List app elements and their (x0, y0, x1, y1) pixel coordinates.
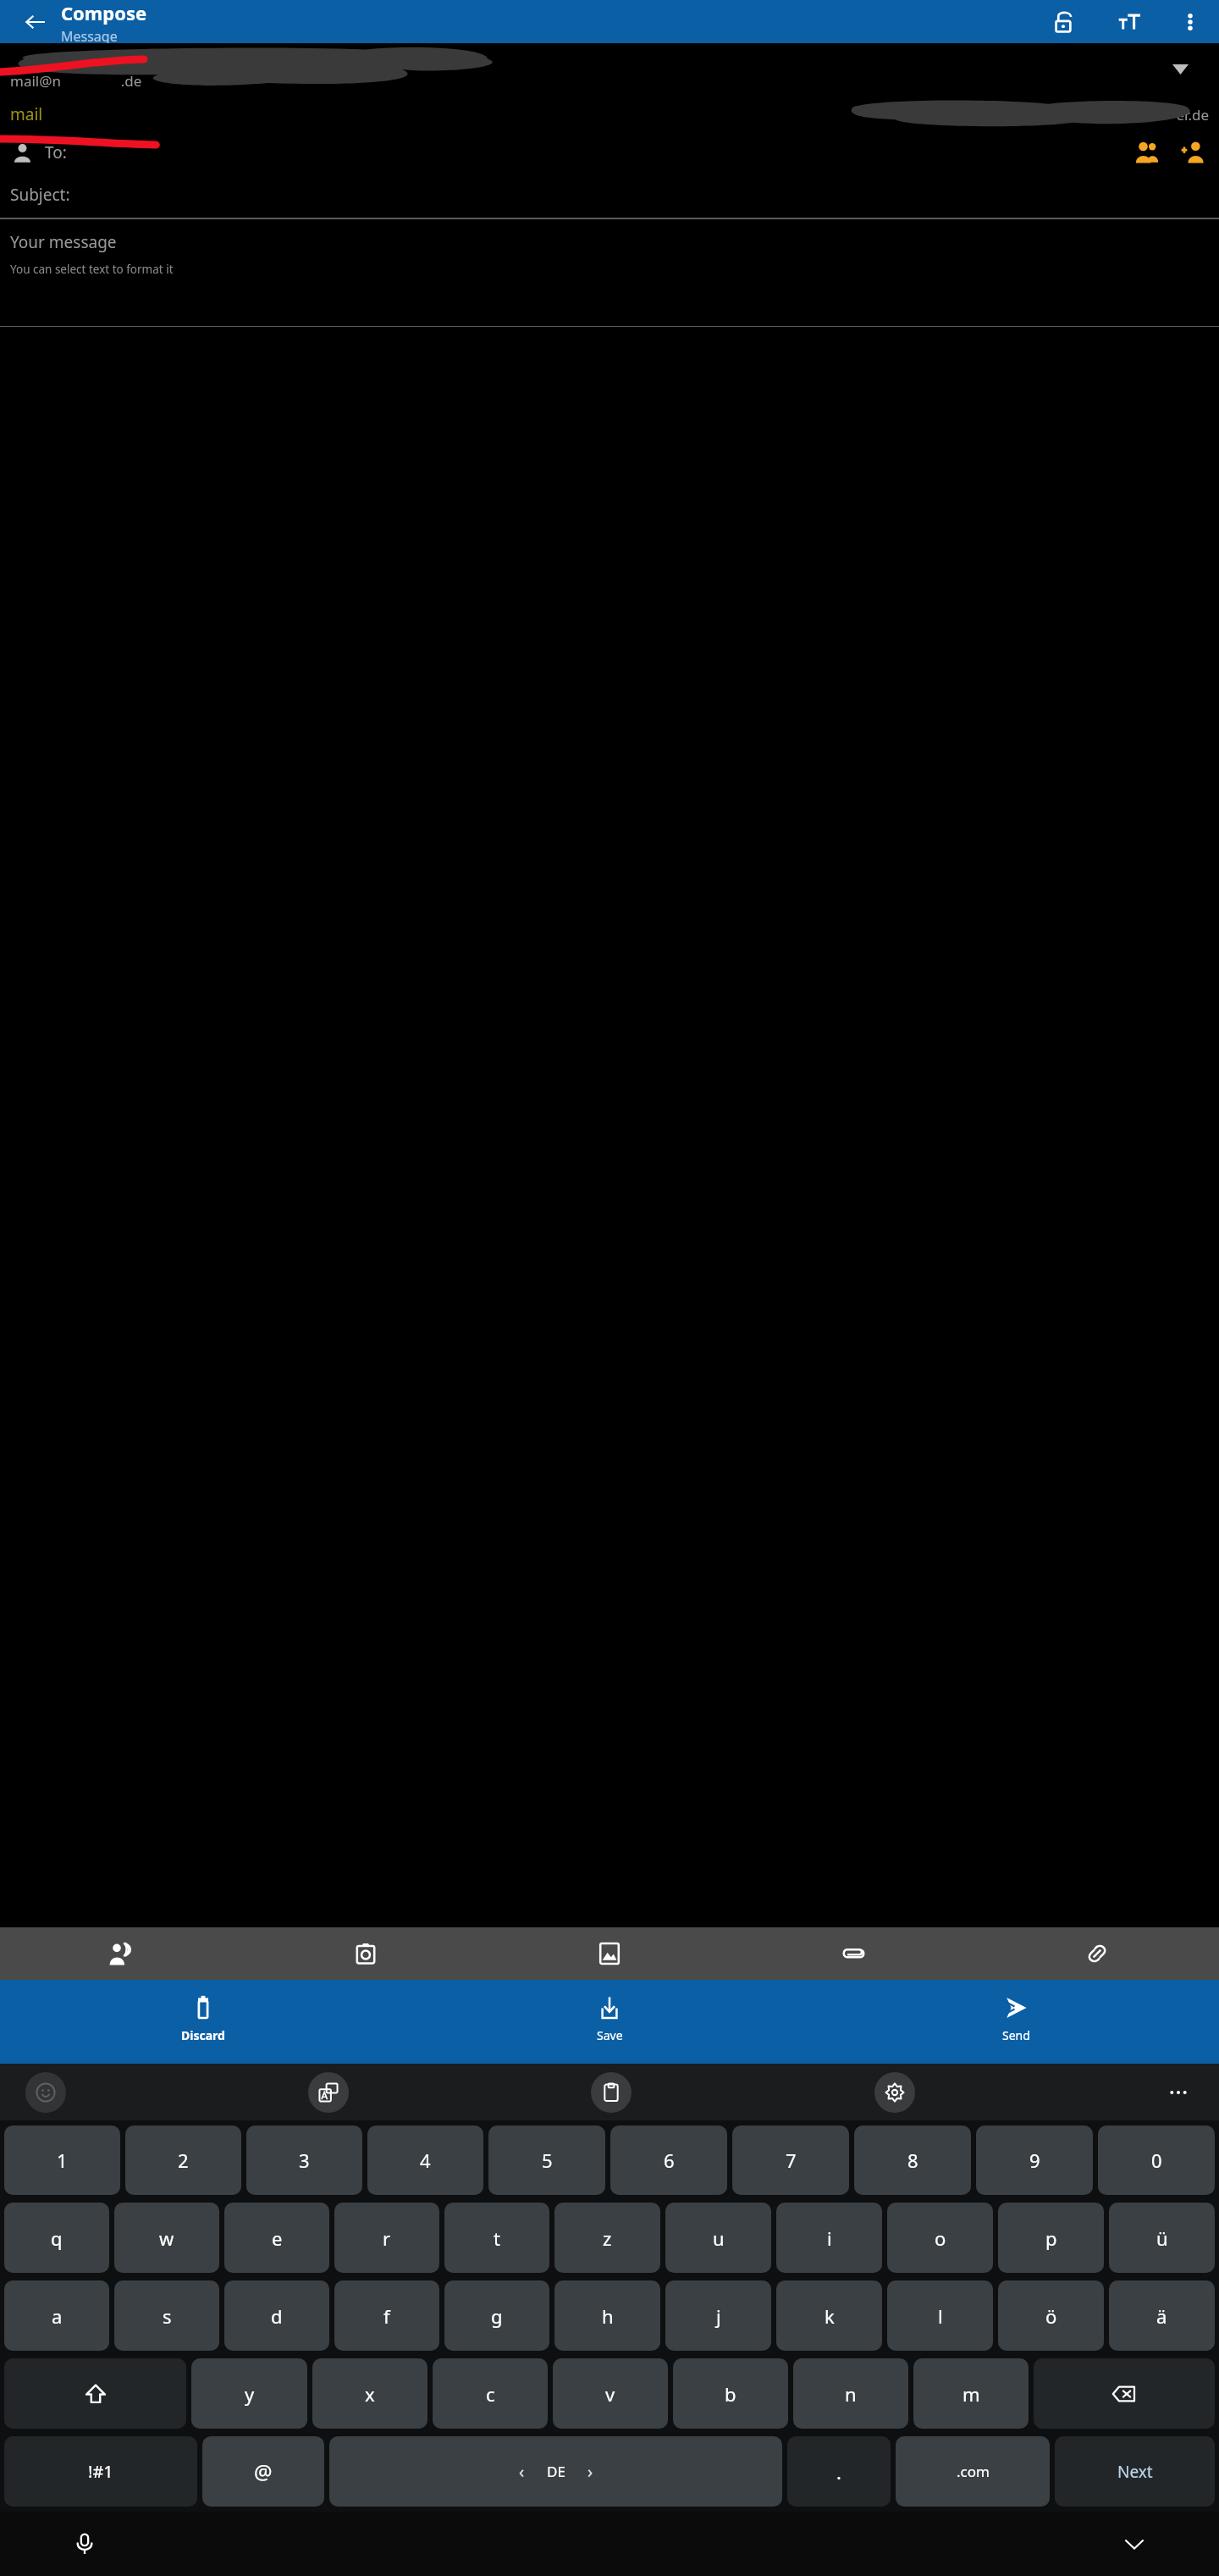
button[interactable]: ü (1109, 2203, 1215, 2273)
button[interactable]: u (665, 2203, 771, 2273)
button[interactable]: j (665, 2280, 771, 2351)
button[interactable]: Insert link (975, 1927, 1219, 1980)
staticText: l (938, 2303, 943, 2329)
staticText: mail (10, 103, 43, 125)
button[interactable]: mail (0, 96, 1219, 133)
button[interactable]: !#1 (4, 2436, 197, 2507)
button[interactable]: .com (896, 2436, 1050, 2507)
button[interactable]: Settings (874, 2072, 915, 2113)
button[interactable]: Discard (0, 1980, 406, 2064)
button[interactable]: ä (1109, 2280, 1215, 2351)
button[interactable]: Insert image (488, 1927, 731, 1980)
staticText: Send (1002, 2027, 1030, 2043)
button[interactable]: Add contact (1172, 133, 1214, 172)
button[interactable]: 0 (1098, 2125, 1215, 2195)
button[interactable]: a (4, 2280, 109, 2351)
button[interactable]: f (334, 2280, 439, 2351)
button[interactable]: q (4, 2203, 109, 2273)
button[interactable]: k (776, 2280, 882, 2351)
button[interactable]: Next (1055, 2436, 1215, 2507)
button[interactable]: t (444, 2203, 549, 2273)
button[interactable]: g (444, 2280, 549, 2351)
staticText: 8 (907, 2148, 918, 2173)
button[interactable]: n (793, 2358, 908, 2429)
button[interactable]: Attach file (731, 1927, 975, 1980)
button[interactable]: 9 (976, 2125, 1093, 2195)
button[interactable]: Space (329, 2436, 782, 2507)
button[interactable]: x (312, 2358, 427, 2429)
button[interactable]: m (913, 2358, 1029, 2429)
button[interactable]: Save (406, 1980, 813, 2064)
button[interactable]: Text size (1107, 0, 1151, 43)
staticText: 3 (299, 2148, 310, 2173)
staticText: Next (1117, 2461, 1153, 2483)
button[interactable]: e (224, 2203, 329, 2273)
staticText: t (494, 2225, 500, 2251)
staticText: n (845, 2381, 857, 2407)
staticText: Compose (61, 0, 147, 25)
staticText: 0 (1151, 2148, 1162, 2173)
staticText: ‹ (519, 2460, 525, 2483)
button[interactable]: Voice input (61, 2520, 108, 2568)
button[interactable]: Your message (0, 219, 1219, 326)
button[interactable]: . (787, 2436, 891, 2507)
button[interactable]: Translate (308, 2072, 349, 2113)
button[interactable]: d (224, 2280, 329, 2351)
button[interactable]: h (554, 2280, 660, 2351)
button[interactable]: b (673, 2358, 788, 2429)
staticText: Discard (181, 2027, 225, 2043)
button[interactable]: c (433, 2358, 548, 2429)
staticText: g (491, 2303, 503, 2329)
button[interactable]: Subject: (0, 172, 1219, 218)
staticText: q (51, 2225, 63, 2251)
button[interactable]: o (887, 2203, 993, 2273)
button[interactable]: w (114, 2203, 219, 2273)
button[interactable]: i (776, 2203, 882, 2273)
button[interactable]: 3 (246, 2125, 362, 2195)
button[interactable]: Shift (4, 2358, 186, 2429)
button[interactable]: y (191, 2358, 307, 2429)
button[interactable]: ö (998, 2280, 1104, 2351)
button[interactable]: 4 (367, 2125, 483, 2195)
button[interactable]: Back (12, 0, 59, 43)
staticText: x (365, 2381, 375, 2407)
button[interactable]: More (1158, 2072, 1199, 2113)
staticText: Your message (10, 231, 117, 253)
staticText: . (836, 2459, 841, 2485)
button[interactable]: s (114, 2280, 219, 2351)
button[interactable]: v (553, 2358, 668, 2429)
button[interactable]: Take photo (244, 1927, 488, 1980)
button[interactable]: Backspace (1034, 2358, 1215, 2429)
button[interactable]: Hide keyboard (1111, 2520, 1158, 2568)
staticText: r (383, 2225, 391, 2251)
button[interactable]: 1 (4, 2125, 120, 2195)
button[interactable]: Emoji (25, 2072, 66, 2113)
button[interactable]: l (887, 2280, 993, 2351)
button[interactable]: mail@n .de (0, 43, 1219, 96)
button[interactable]: 2 (125, 2125, 241, 2195)
button[interactable]: Choose contacts (1126, 133, 1168, 172)
button[interactable]: Record audio (0, 1927, 244, 1980)
button[interactable]: r (334, 2203, 439, 2273)
staticText: s (163, 2303, 172, 2329)
staticText: @ (254, 2457, 273, 2485)
button[interactable]: z (554, 2203, 660, 2273)
staticText: i (827, 2225, 832, 2251)
button[interactable]: To: (0, 133, 1219, 172)
staticText: To: (45, 141, 67, 163)
staticText: 2 (178, 2148, 189, 2173)
button[interactable]: More options (1170, 2, 1211, 42)
button[interactable]: @ (202, 2436, 324, 2507)
staticText: 9 (1029, 2148, 1040, 2173)
button[interactable]: 7 (732, 2125, 849, 2195)
button[interactable]: 8 (854, 2125, 971, 2195)
staticText: m (963, 2381, 980, 2407)
button[interactable]: 5 (488, 2125, 605, 2195)
button[interactable]: Send (813, 1980, 1219, 2064)
button[interactable]: Clipboard (591, 2072, 632, 2113)
button[interactable]: 6 (610, 2125, 727, 2195)
staticText: d (271, 2303, 283, 2329)
staticText: › (587, 2460, 593, 2483)
button[interactable]: Encryption off (1041, 0, 1085, 43)
button[interactable]: p (998, 2203, 1104, 2273)
